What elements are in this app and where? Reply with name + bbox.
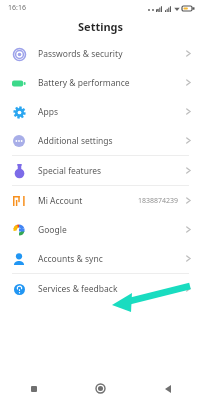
- button[interactable]: Recent apps: [0, 376, 67, 401]
- button[interactable]: Google: [0, 215, 201, 244]
- button[interactable]: Home: [67, 376, 134, 401]
- button[interactable]: Passwords & security: [0, 39, 201, 68]
- staticText: Battery & performance: [38, 77, 130, 89]
- button[interactable]: Mi Account: [0, 186, 201, 215]
- staticText: 1838874239: [138, 196, 179, 206]
- staticText: Mi Account: [38, 195, 83, 207]
- staticText: Google: [38, 224, 67, 236]
- staticText: Apps: [38, 106, 58, 118]
- staticText: 16:16: [8, 3, 26, 13]
- button[interactable]: Special features: [0, 156, 201, 185]
- staticText: Accounts & sync: [38, 253, 103, 265]
- button[interactable]: Services & feedback: [0, 274, 201, 303]
- staticText: Additional settings: [38, 135, 113, 147]
- button[interactable]: Accounts & sync: [0, 244, 201, 273]
- staticText: Settings: [78, 19, 124, 34]
- staticText: Passwords & security: [38, 48, 123, 60]
- button[interactable]: Battery & performance: [0, 68, 201, 97]
- staticText: Services & feedback: [38, 283, 118, 295]
- button[interactable]: Back: [134, 376, 201, 401]
- button[interactable]: Apps: [0, 97, 201, 126]
- staticText: Special features: [38, 165, 102, 177]
- button[interactable]: Additional settings: [0, 126, 201, 155]
